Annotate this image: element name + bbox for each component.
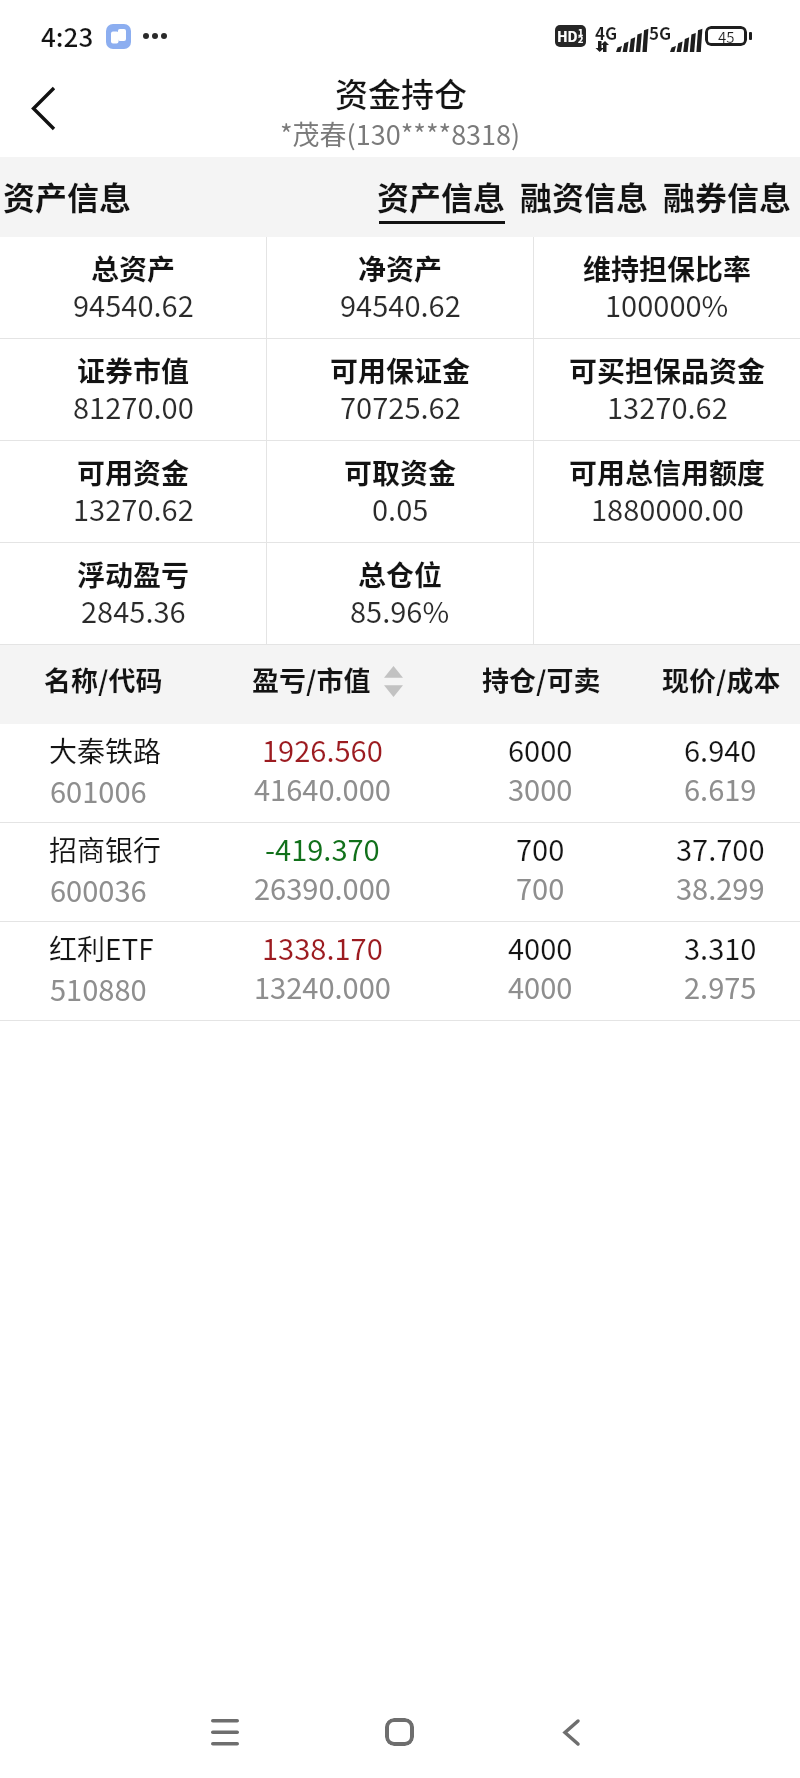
staticText: 13270.62 [73, 487, 194, 529]
staticText: 100000% [605, 283, 729, 325]
staticText: 4G [595, 20, 616, 45]
staticText: 41640.000 [254, 767, 391, 809]
staticText: 1 [578, 26, 584, 39]
staticText: 盈亏/市值 [252, 660, 371, 699]
staticText: 总资产 [91, 248, 176, 289]
staticText: 700 [516, 827, 565, 869]
staticText: 资产信息 [377, 173, 506, 219]
staticText: 38.299 [676, 866, 765, 908]
staticText: 可用保证金 [330, 350, 471, 391]
button[interactable]: 红利ETF [0, 922, 800, 1020]
staticText: 2 [578, 33, 584, 46]
staticText: HD [557, 26, 578, 46]
staticText: 大秦铁路 [49, 730, 162, 771]
staticText: 510880 [50, 967, 147, 1009]
staticText: 4:23 [41, 17, 94, 55]
staticText: 1926.560 [262, 728, 383, 770]
staticText: 13240.000 [254, 965, 391, 1007]
button[interactable]: 融券信息 [663, 171, 792, 224]
staticText: 融资信息 [520, 173, 649, 219]
staticText: 94540.62 [340, 283, 461, 325]
button[interactable]: Back [0, 66, 86, 151]
staticText: 81270.00 [73, 385, 194, 427]
staticText: 融券信息 [663, 173, 792, 219]
staticText: -419.370 [265, 827, 380, 869]
staticText: 1880000.00 [591, 487, 744, 529]
staticText: 名称/代码 [44, 660, 163, 699]
button[interactable]: Recent apps [170, 1686, 280, 1778]
staticText: 证券市值 [77, 350, 190, 391]
staticText: 6.940 [684, 728, 757, 770]
staticText: *茂春(130****8318) [280, 114, 521, 151]
staticText: 总仓位 [358, 554, 443, 595]
staticText: 600036 [50, 868, 147, 910]
staticText: 700 [516, 866, 565, 908]
staticText: 3.310 [684, 926, 757, 968]
staticText: 可买担保品资金 [569, 350, 766, 391]
button[interactable]: Home [344, 1686, 454, 1778]
staticText: 可用总信用额度 [569, 452, 766, 493]
staticText: 4000 [508, 926, 573, 968]
staticText: 6.619 [684, 767, 757, 809]
button[interactable]: Back [516, 1686, 626, 1778]
staticText: 可取资金 [344, 452, 457, 493]
button[interactable]: 招商银行 [0, 823, 800, 921]
staticText: 维持担保比率 [583, 248, 752, 289]
button[interactable]: 大秦铁路 [0, 724, 800, 822]
staticText: 0.05 [372, 487, 429, 529]
staticText: 3000 [508, 767, 573, 809]
staticText: 85.96% [350, 589, 450, 631]
staticText: 资金持仓 [335, 69, 467, 117]
staticText: 现价/成本 [662, 660, 781, 699]
button[interactable]: 资产信息 [377, 171, 506, 224]
staticText: 5G [649, 20, 670, 45]
staticText: 净资产 [358, 248, 443, 289]
staticText: 1338.170 [262, 926, 383, 968]
staticText: 可用资金 [77, 452, 190, 493]
staticText: 70725.62 [340, 385, 461, 427]
staticText: 45 [718, 26, 735, 46]
staticText: 94540.62 [73, 283, 194, 325]
staticText: 浮动盈亏 [77, 554, 190, 595]
button[interactable]: 融资信息 [520, 171, 649, 224]
staticText: 601006 [50, 769, 147, 811]
staticText: 4000 [508, 965, 573, 1007]
staticText: 6000 [508, 728, 573, 770]
staticText: 资产信息 [3, 173, 132, 219]
staticText: 红利ETF [49, 928, 154, 969]
staticText: 2845.36 [81, 589, 186, 631]
staticText: 37.700 [676, 827, 765, 869]
staticText: 26390.000 [254, 866, 391, 908]
staticText: 招商银行 [49, 829, 162, 870]
staticText: 持仓/可卖 [482, 660, 601, 699]
staticText: 13270.62 [607, 385, 728, 427]
staticText: 2.975 [684, 965, 757, 1007]
